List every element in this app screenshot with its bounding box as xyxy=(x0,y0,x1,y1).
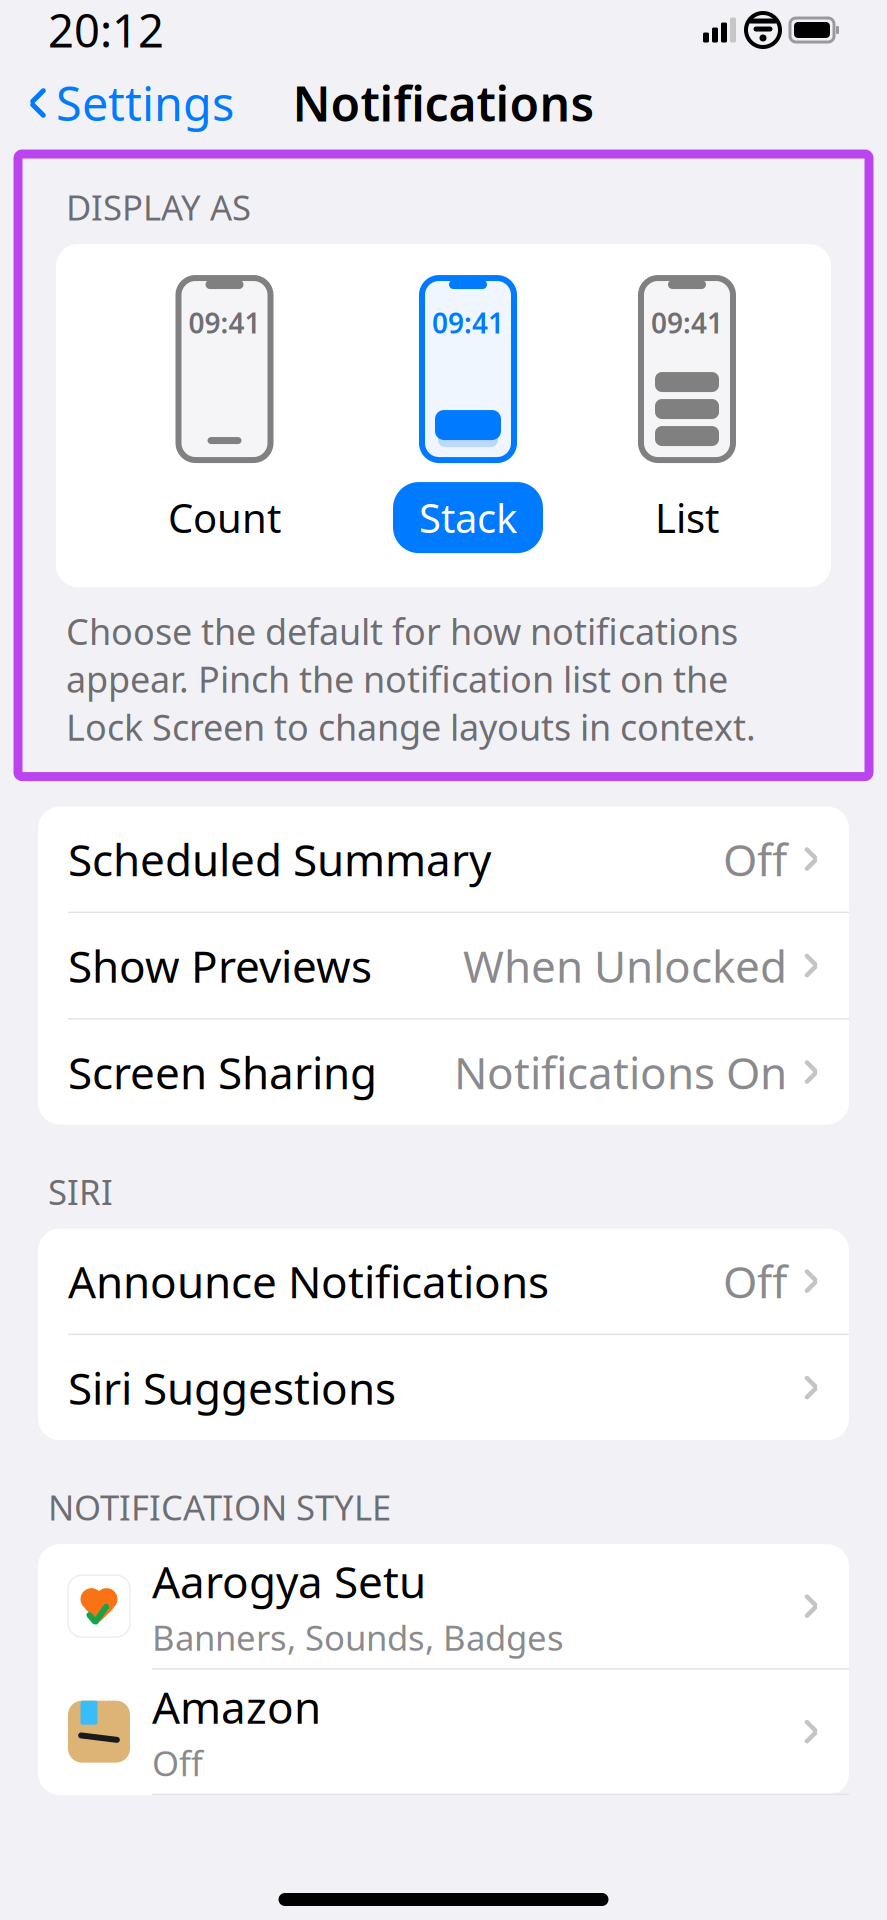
staticText: Show Previews xyxy=(68,936,372,995)
staticText: 20:12 xyxy=(48,0,164,60)
button[interactable]: Screen Sharing xyxy=(38,1020,849,1125)
button[interactable]: Scheduled Summary xyxy=(38,807,849,912)
staticText: Choose the default for how notifications… xyxy=(66,607,756,751)
button[interactable]: Show Previews xyxy=(38,913,849,1018)
staticText: Settings xyxy=(56,72,234,134)
staticText: Amazon xyxy=(152,1677,321,1736)
button[interactable]: Announce Notifications xyxy=(38,1229,849,1334)
staticText: Banners, Sounds, Badges xyxy=(152,1614,564,1660)
button[interactable]: 09:41 xyxy=(142,278,307,553)
staticText: SIRI xyxy=(48,1169,113,1215)
staticText: Off xyxy=(152,1740,203,1786)
button[interactable]: Siri Suggestions xyxy=(38,1335,849,1440)
staticText: Off xyxy=(723,1252,787,1310)
staticText: 09:41 xyxy=(432,304,504,341)
button[interactable]: 09:41 xyxy=(629,278,745,553)
staticText: 09:41 xyxy=(188,304,260,341)
button[interactable]: 09:41 xyxy=(393,278,543,553)
button[interactable]: Amazon xyxy=(38,1670,849,1794)
staticText: Notifications On xyxy=(454,1043,787,1101)
staticText: NOTIFICATION STYLE xyxy=(48,1484,391,1530)
staticText: Screen Sharing xyxy=(68,1043,377,1101)
staticText: Notifications xyxy=(292,71,594,135)
button[interactable]: Aarogya Setu xyxy=(38,1544,849,1668)
staticText: Announce Notifications xyxy=(68,1252,549,1310)
staticText: List xyxy=(655,491,719,544)
button[interactable]: Settings xyxy=(18,64,244,142)
staticText: Stack xyxy=(419,491,517,544)
staticText: DISPLAY AS xyxy=(66,184,251,230)
staticText: Siri Suggestions xyxy=(68,1358,396,1417)
staticText: When Unlocked xyxy=(463,936,787,995)
staticText: Scheduled Summary xyxy=(68,830,491,888)
staticText: Count xyxy=(168,491,281,544)
staticText: Aarogya Setu xyxy=(152,1552,426,1610)
staticText: 09:41 xyxy=(651,304,723,341)
staticText: Off xyxy=(723,830,787,888)
